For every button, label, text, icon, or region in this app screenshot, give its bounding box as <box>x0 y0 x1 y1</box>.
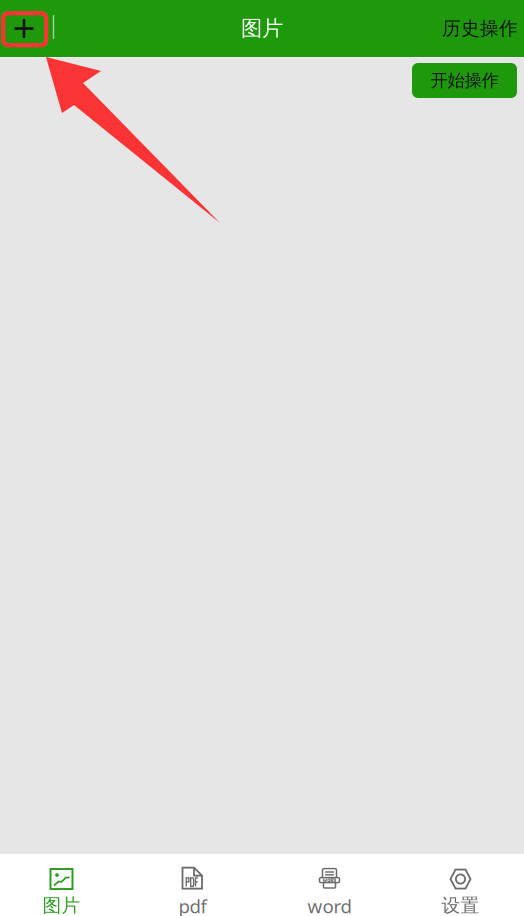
button[interactable]: pdf <box>123 848 262 916</box>
staticText: pdf <box>178 894 206 916</box>
staticText: 图片 <box>241 15 283 42</box>
button[interactable]: 开始操作 <box>412 63 517 98</box>
button[interactable]: 图片 <box>0 849 123 916</box>
button[interactable]: 历史操作 <box>442 9 524 48</box>
staticText: 设置 <box>441 894 479 916</box>
button[interactable]: word <box>262 848 397 916</box>
staticText: 历史操作 <box>442 17 518 40</box>
button[interactable]: Add <box>4 11 44 45</box>
staticText: word <box>307 894 351 916</box>
staticText: 开始操作 <box>430 70 498 91</box>
staticText: 图片 <box>42 894 80 916</box>
button[interactable]: 设置 <box>397 849 524 916</box>
